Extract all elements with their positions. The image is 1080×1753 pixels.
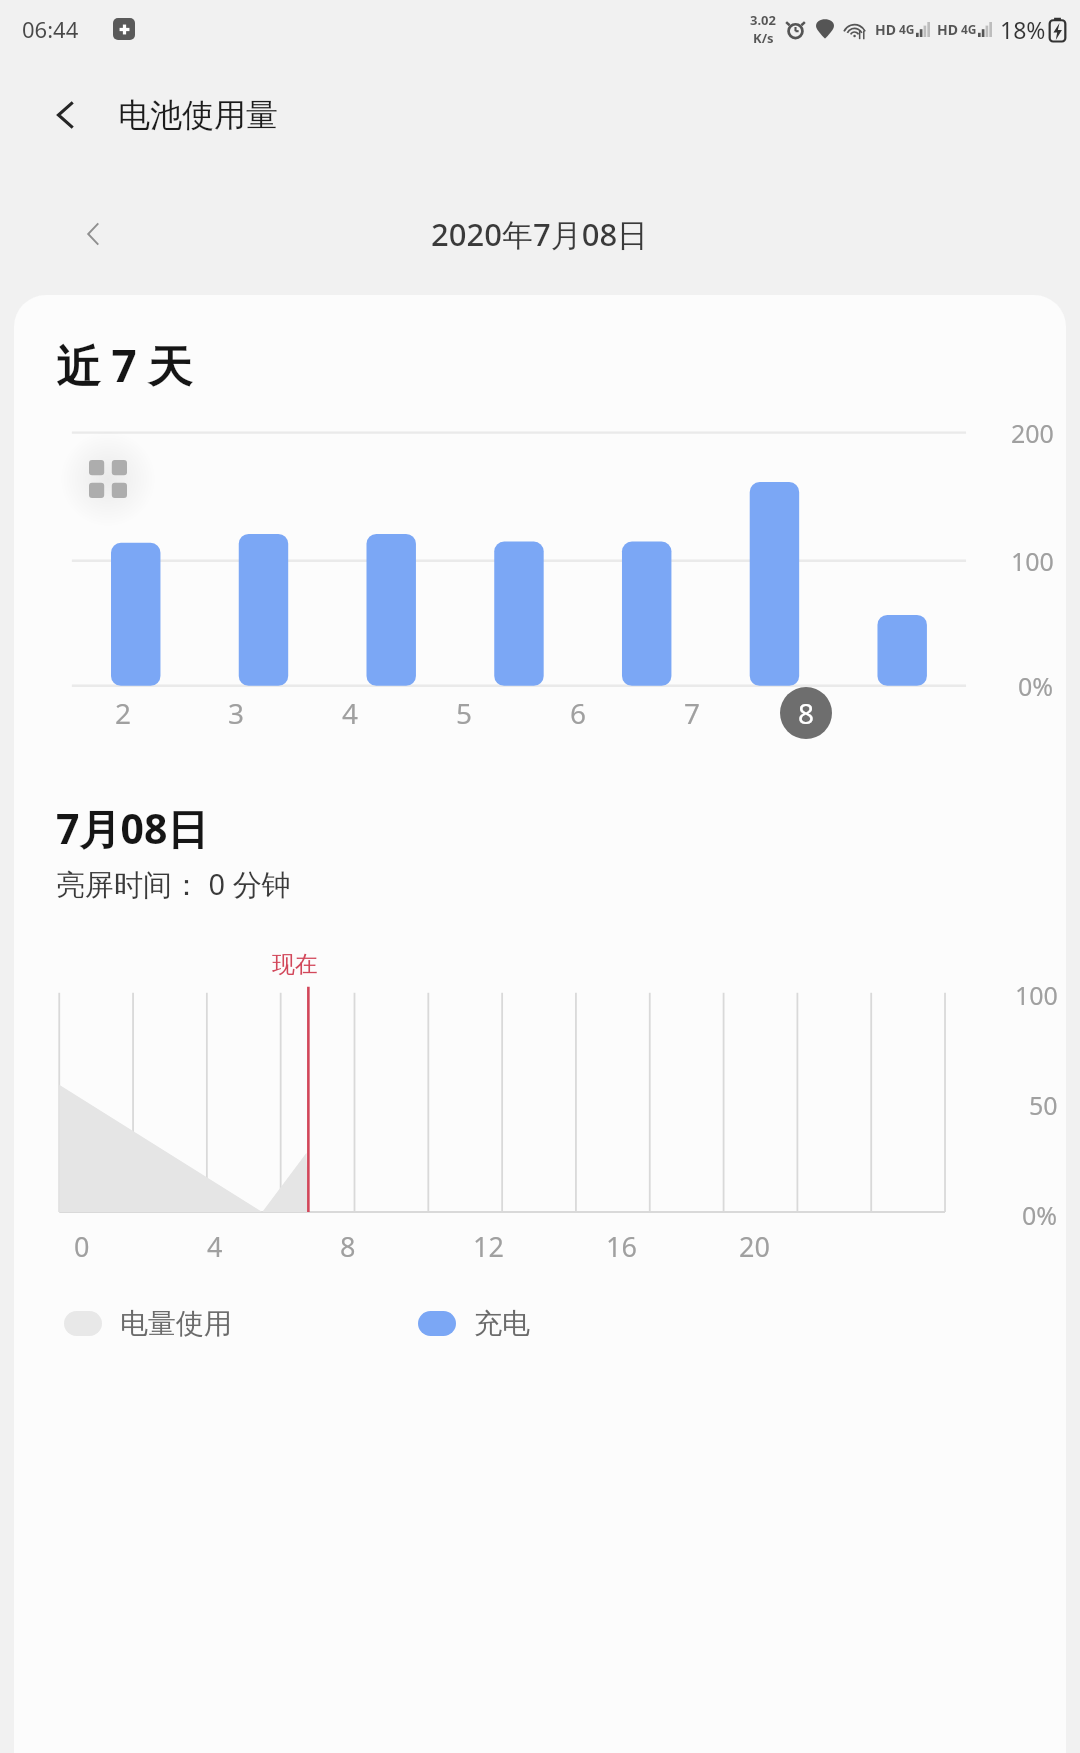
button[interactable]: 充电	[418, 1306, 530, 1341]
staticText: 8	[340, 1228, 356, 1265]
button[interactable]: 6	[552, 687, 604, 739]
staticText: 2020年7月08日	[431, 213, 649, 255]
staticText: 电池使用量	[118, 95, 278, 135]
staticText: 4	[207, 1228, 223, 1265]
staticText: 4G	[961, 21, 977, 37]
staticText: 充电	[474, 1306, 530, 1341]
button[interactable]: 8	[780, 687, 832, 739]
staticText: 现在	[272, 950, 318, 979]
staticText: 0%	[1018, 669, 1054, 703]
button[interactable]: 2	[97, 687, 149, 739]
button[interactable]: 电量使用	[64, 1306, 232, 1341]
staticText: 50	[1029, 1088, 1058, 1122]
staticText: 16	[606, 1228, 637, 1265]
staticText: 2	[115, 694, 132, 732]
staticText: 6	[570, 694, 587, 732]
staticText: 电量使用	[120, 1306, 232, 1341]
button[interactable]: Back	[36, 85, 96, 145]
staticText: 亮屏时间： 0 分钟	[56, 864, 291, 904]
staticText: K/s	[753, 29, 774, 47]
button[interactable]: 7	[666, 687, 718, 739]
staticText: 06:44	[22, 14, 79, 44]
staticText: 0%	[1022, 1198, 1058, 1232]
staticText: 近 7 天	[56, 335, 193, 395]
staticText: 0	[74, 1228, 90, 1265]
staticText: 4G	[899, 21, 915, 37]
button[interactable]: Previous day	[60, 201, 126, 267]
button[interactable]: 5	[438, 687, 490, 739]
button[interactable]: 3	[210, 687, 262, 739]
staticText: 12	[473, 1228, 504, 1265]
staticText: 20	[739, 1228, 770, 1265]
button[interactable]: 4	[324, 687, 376, 739]
staticText: 7	[684, 694, 701, 732]
staticText: 3	[228, 694, 245, 732]
staticText: 7月08日	[56, 800, 209, 856]
staticText: 4	[342, 694, 359, 732]
staticText: 100	[1015, 978, 1058, 1012]
button[interactable]: Chart options	[60, 431, 156, 527]
staticText: 18%	[1000, 14, 1046, 45]
staticText: HD	[937, 20, 958, 39]
staticText: 8	[798, 694, 815, 732]
staticText: 200	[1011, 416, 1054, 450]
staticText: 5	[456, 694, 473, 732]
staticText: 3.02	[750, 11, 776, 29]
staticText: HD	[875, 20, 896, 39]
staticText: 100	[1011, 544, 1054, 578]
